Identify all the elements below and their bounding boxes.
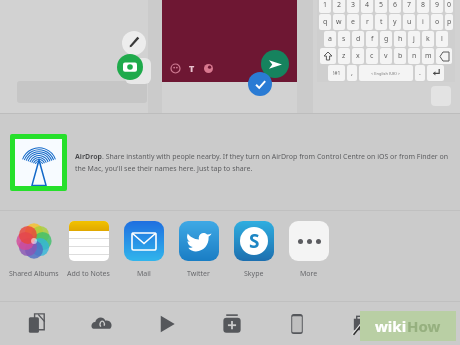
staticText: w [336, 17, 342, 27]
staticText: . [419, 68, 421, 78]
staticText: k [426, 34, 430, 44]
staticText: q [323, 17, 328, 27]
staticText: AirDrop. Share instantly with people nea… [75, 152, 460, 173]
staticText: x [356, 51, 360, 61]
staticText: n [412, 51, 417, 61]
staticText: l [441, 34, 443, 44]
staticText: 5 [379, 0, 384, 10]
staticText: m [425, 51, 432, 61]
staticText: s [342, 34, 346, 44]
staticText: t [380, 17, 383, 27]
staticText: g [384, 34, 389, 44]
staticText: 7 [407, 0, 412, 10]
staticText: < English (UK) > [371, 71, 401, 76]
other: More [289, 221, 329, 261]
button[interactable]: Save to Files [69, 302, 134, 345]
button[interactable]: More [281, 219, 336, 279]
staticText: o [435, 17, 440, 27]
staticText: c [370, 51, 374, 61]
staticText: , [351, 68, 353, 78]
staticText: b [398, 51, 403, 61]
staticText: wiki [375, 316, 407, 336]
button[interactable]: Copy [4, 302, 69, 345]
staticText: Skype [244, 269, 264, 279]
staticText: 1 [323, 0, 328, 10]
staticText: More [300, 269, 318, 279]
button[interactable]: Mail [116, 219, 171, 279]
button[interactable]: Shared Albums [6, 219, 61, 279]
staticText: d [356, 34, 361, 44]
staticText: 3 [351, 0, 356, 10]
button[interactable]: Folder [394, 302, 459, 345]
button[interactable]: Add to Notes [61, 219, 116, 279]
staticText: T [189, 62, 195, 74]
staticText: Twitter [187, 269, 210, 279]
staticText: y [393, 17, 397, 27]
staticText: z [342, 51, 346, 61]
staticText: 2 [337, 0, 342, 10]
button[interactable]: Slideshow [134, 302, 199, 345]
staticText: a [328, 34, 332, 44]
staticText: 9 [435, 0, 440, 10]
staticText: 0 [447, 0, 452, 10]
staticText: !#1 [333, 70, 341, 77]
staticText: Add to Notes [67, 269, 110, 279]
staticText: 8 [421, 0, 426, 10]
staticText: Shared Albums [9, 269, 59, 279]
button[interactable]: Twitter [171, 219, 226, 279]
staticText: How [407, 316, 441, 336]
staticText: 6 [393, 0, 398, 10]
button[interactable]: S [226, 219, 281, 279]
staticText: i [422, 17, 424, 27]
staticText: p [447, 17, 452, 27]
button[interactable]: Use as Wallpaper [264, 302, 329, 345]
staticText: Mail [137, 269, 151, 279]
staticText: S [249, 228, 260, 254]
staticText: h [398, 34, 403, 44]
staticText: u [407, 17, 412, 27]
staticText: 4 [365, 0, 370, 10]
staticText: e [351, 17, 355, 27]
staticText: j [413, 34, 415, 44]
staticText: f [371, 34, 374, 44]
staticText: r [366, 17, 369, 27]
staticText: v [384, 51, 388, 61]
button[interactable]: Add to Album [199, 302, 264, 345]
button[interactable]: AirDrop. Share instantly with people nea… [0, 114, 460, 210]
button[interactable]: Hide [329, 302, 394, 345]
